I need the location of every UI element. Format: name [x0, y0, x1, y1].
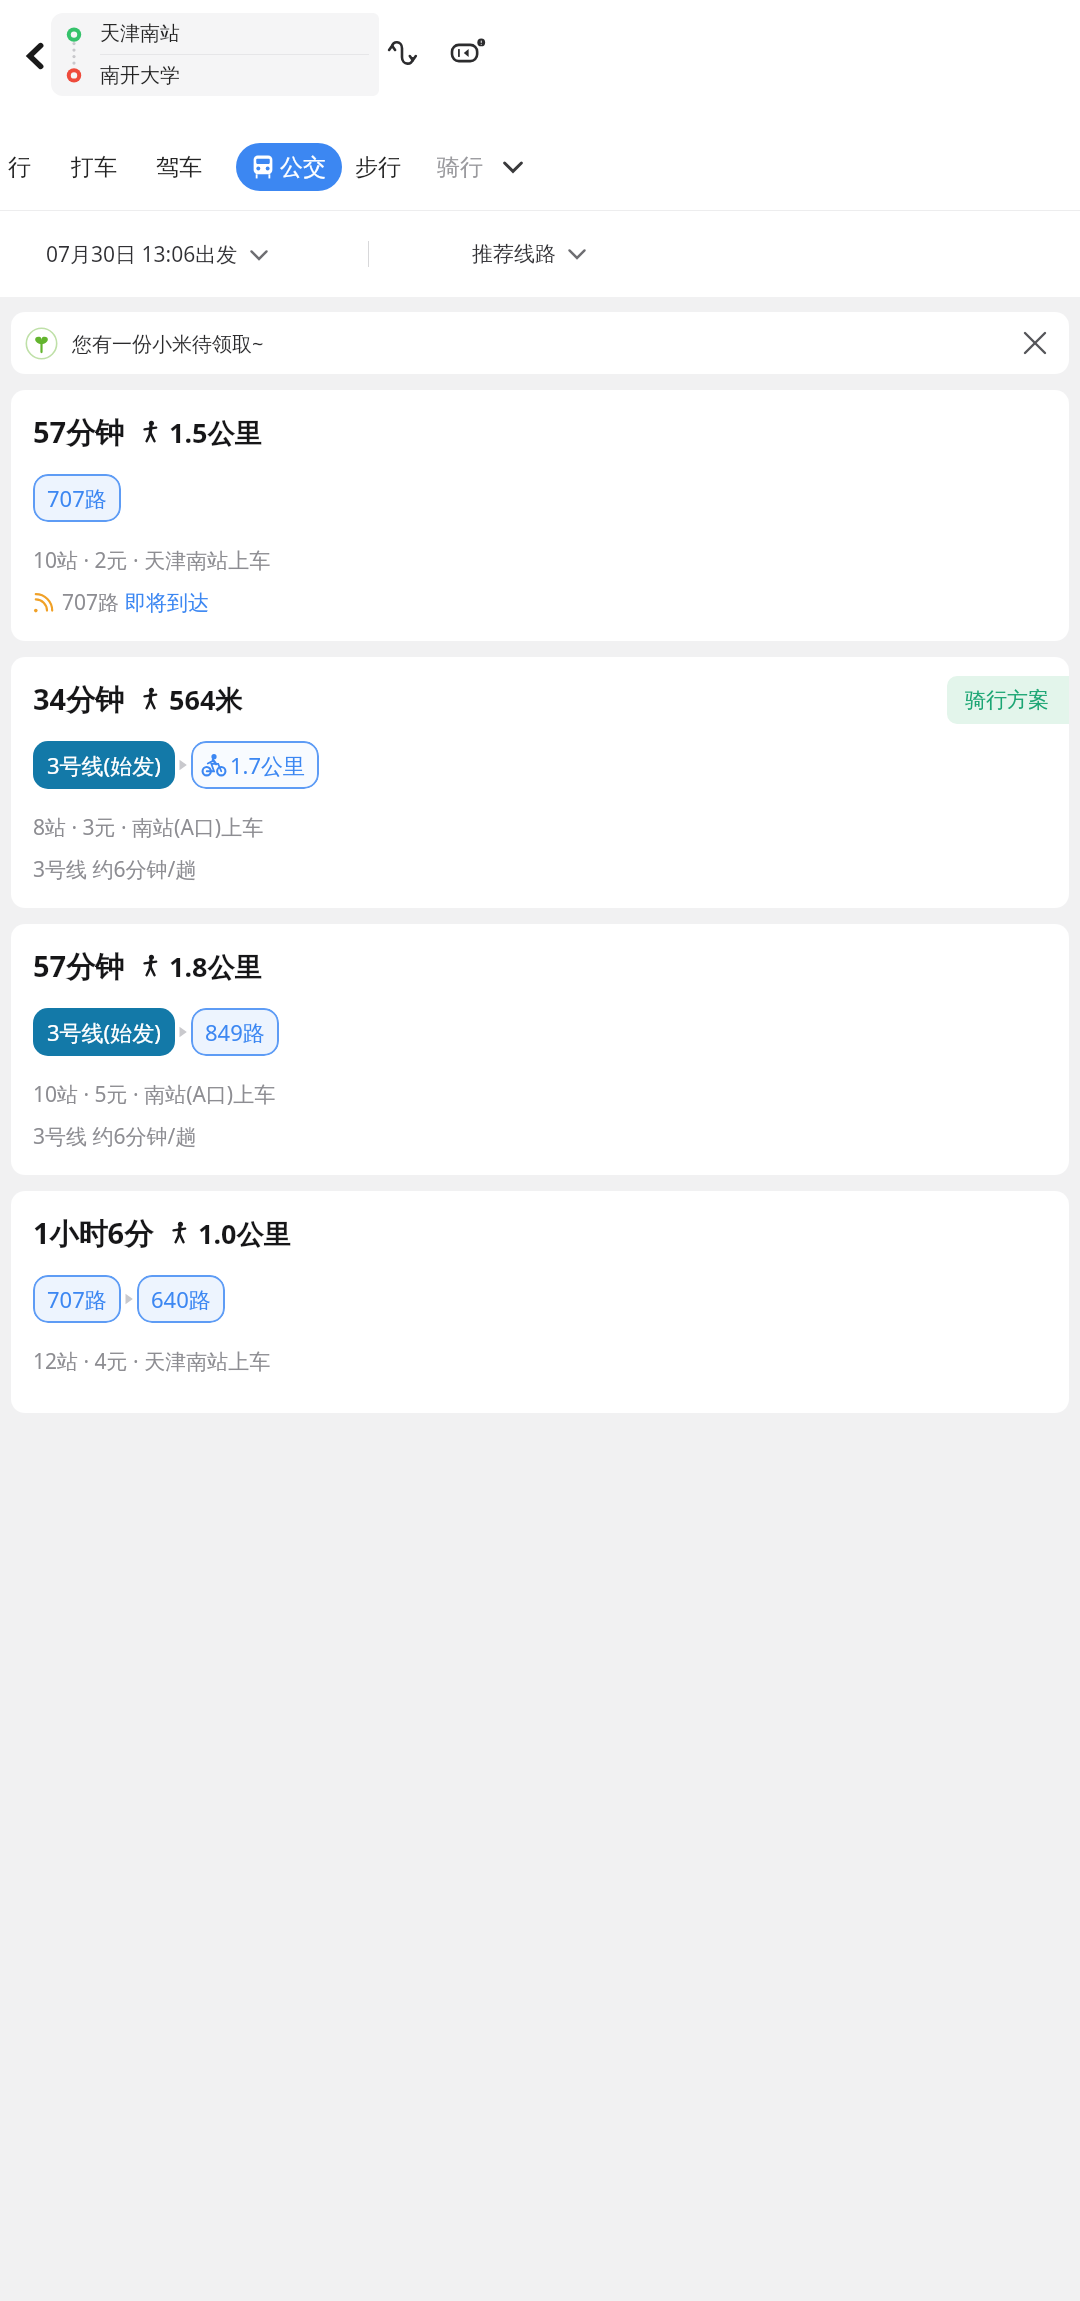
button[interactable]: 3号线(始发) — [33, 741, 175, 789]
staticText: 步行 — [355, 153, 401, 182]
staticText: 10站 · 2元 · 天津南站上车 — [33, 546, 271, 575]
button[interactable]: 1.7公里 — [191, 741, 319, 789]
button[interactable]: Swap start and destination — [379, 30, 425, 76]
button[interactable]: 57分钟 — [11, 924, 1069, 1175]
button[interactable]: 849路 — [191, 1008, 279, 1056]
staticText: 12站 · 4元 · 天津南站上车 — [33, 1347, 271, 1376]
button[interactable]: Transit card — [446, 30, 492, 76]
staticText: 推荐线路 — [472, 241, 556, 267]
staticText: 3号线(始发) — [47, 1017, 161, 1047]
staticText: 1小时6分 — [33, 1213, 154, 1253]
staticText: 849路 — [205, 1017, 265, 1047]
staticText: 8站 · 3元 · 南站(A口)上车 — [33, 813, 264, 842]
staticText: 10站 · 5元 · 南站(A口)上车 — [33, 1080, 276, 1109]
button[interactable]: 步行 — [355, 153, 401, 182]
button[interactable]: 骑行 — [437, 153, 483, 182]
staticText: 行 — [8, 153, 31, 182]
staticText: 3号线 约6分钟/趟 — [33, 855, 197, 884]
button[interactable]: 34分钟 — [11, 657, 1069, 908]
button[interactable]: 骑行方案 — [947, 676, 1069, 724]
staticText: 您有一份小米待领取~ — [72, 330, 264, 357]
staticText: 3号线(始发) — [47, 750, 161, 780]
button[interactable]: 707路 — [33, 474, 121, 522]
staticText: 57分钟 — [33, 946, 125, 986]
button[interactable]: 打车 — [71, 153, 117, 182]
staticText: 骑行 — [437, 153, 483, 182]
staticText: 天津南站 — [100, 21, 180, 46]
staticText: 707路 — [62, 588, 125, 617]
staticText: 南开大学 — [100, 63, 180, 88]
staticText: 骑行方案 — [965, 687, 1049, 713]
button[interactable]: More modes — [493, 147, 533, 187]
staticText: 公交 — [280, 153, 326, 182]
button[interactable]: 驾车 — [156, 153, 202, 182]
button[interactable]: 行 — [8, 153, 31, 182]
staticText: 34分钟 — [33, 679, 125, 719]
staticText: 564米 — [169, 681, 243, 718]
button[interactable]: 公交 — [236, 143, 342, 191]
staticText: 即将到达 — [125, 590, 209, 616]
button[interactable]: 57分钟 — [11, 390, 1069, 641]
button[interactable]: 1小时6分 — [11, 1191, 1069, 1413]
staticText: 1.7公里 — [230, 750, 306, 780]
staticText: 1.8公里 — [169, 948, 262, 985]
staticText: 07月30日 13:06出发 — [46, 240, 238, 269]
staticText: 1.0公里 — [198, 1215, 291, 1252]
button[interactable]: 天津南站 — [51, 13, 379, 54]
staticText: 1.5公里 — [169, 414, 262, 451]
staticText: 640路 — [151, 1284, 211, 1314]
button[interactable]: 07月30日 13:06出发 — [46, 240, 268, 269]
button[interactable]: 707路 — [33, 1275, 121, 1323]
button[interactable]: Back — [8, 28, 64, 84]
button[interactable]: 您有一份小米待领取~ — [11, 312, 1069, 374]
button[interactable]: Close — [1015, 323, 1055, 363]
staticText: 57分钟 — [33, 412, 125, 452]
staticText: 3号线 约6分钟/趟 — [33, 1122, 197, 1151]
staticText: 707路 — [47, 483, 107, 513]
button[interactable]: 推荐线路 — [472, 241, 586, 267]
button[interactable]: 3号线(始发) — [33, 1008, 175, 1056]
staticText: 打车 — [71, 153, 117, 182]
button[interactable]: 640路 — [137, 1275, 225, 1323]
button[interactable]: 南开大学 — [51, 55, 379, 96]
staticText: 驾车 — [156, 153, 202, 182]
staticText: 707路 — [47, 1284, 107, 1314]
